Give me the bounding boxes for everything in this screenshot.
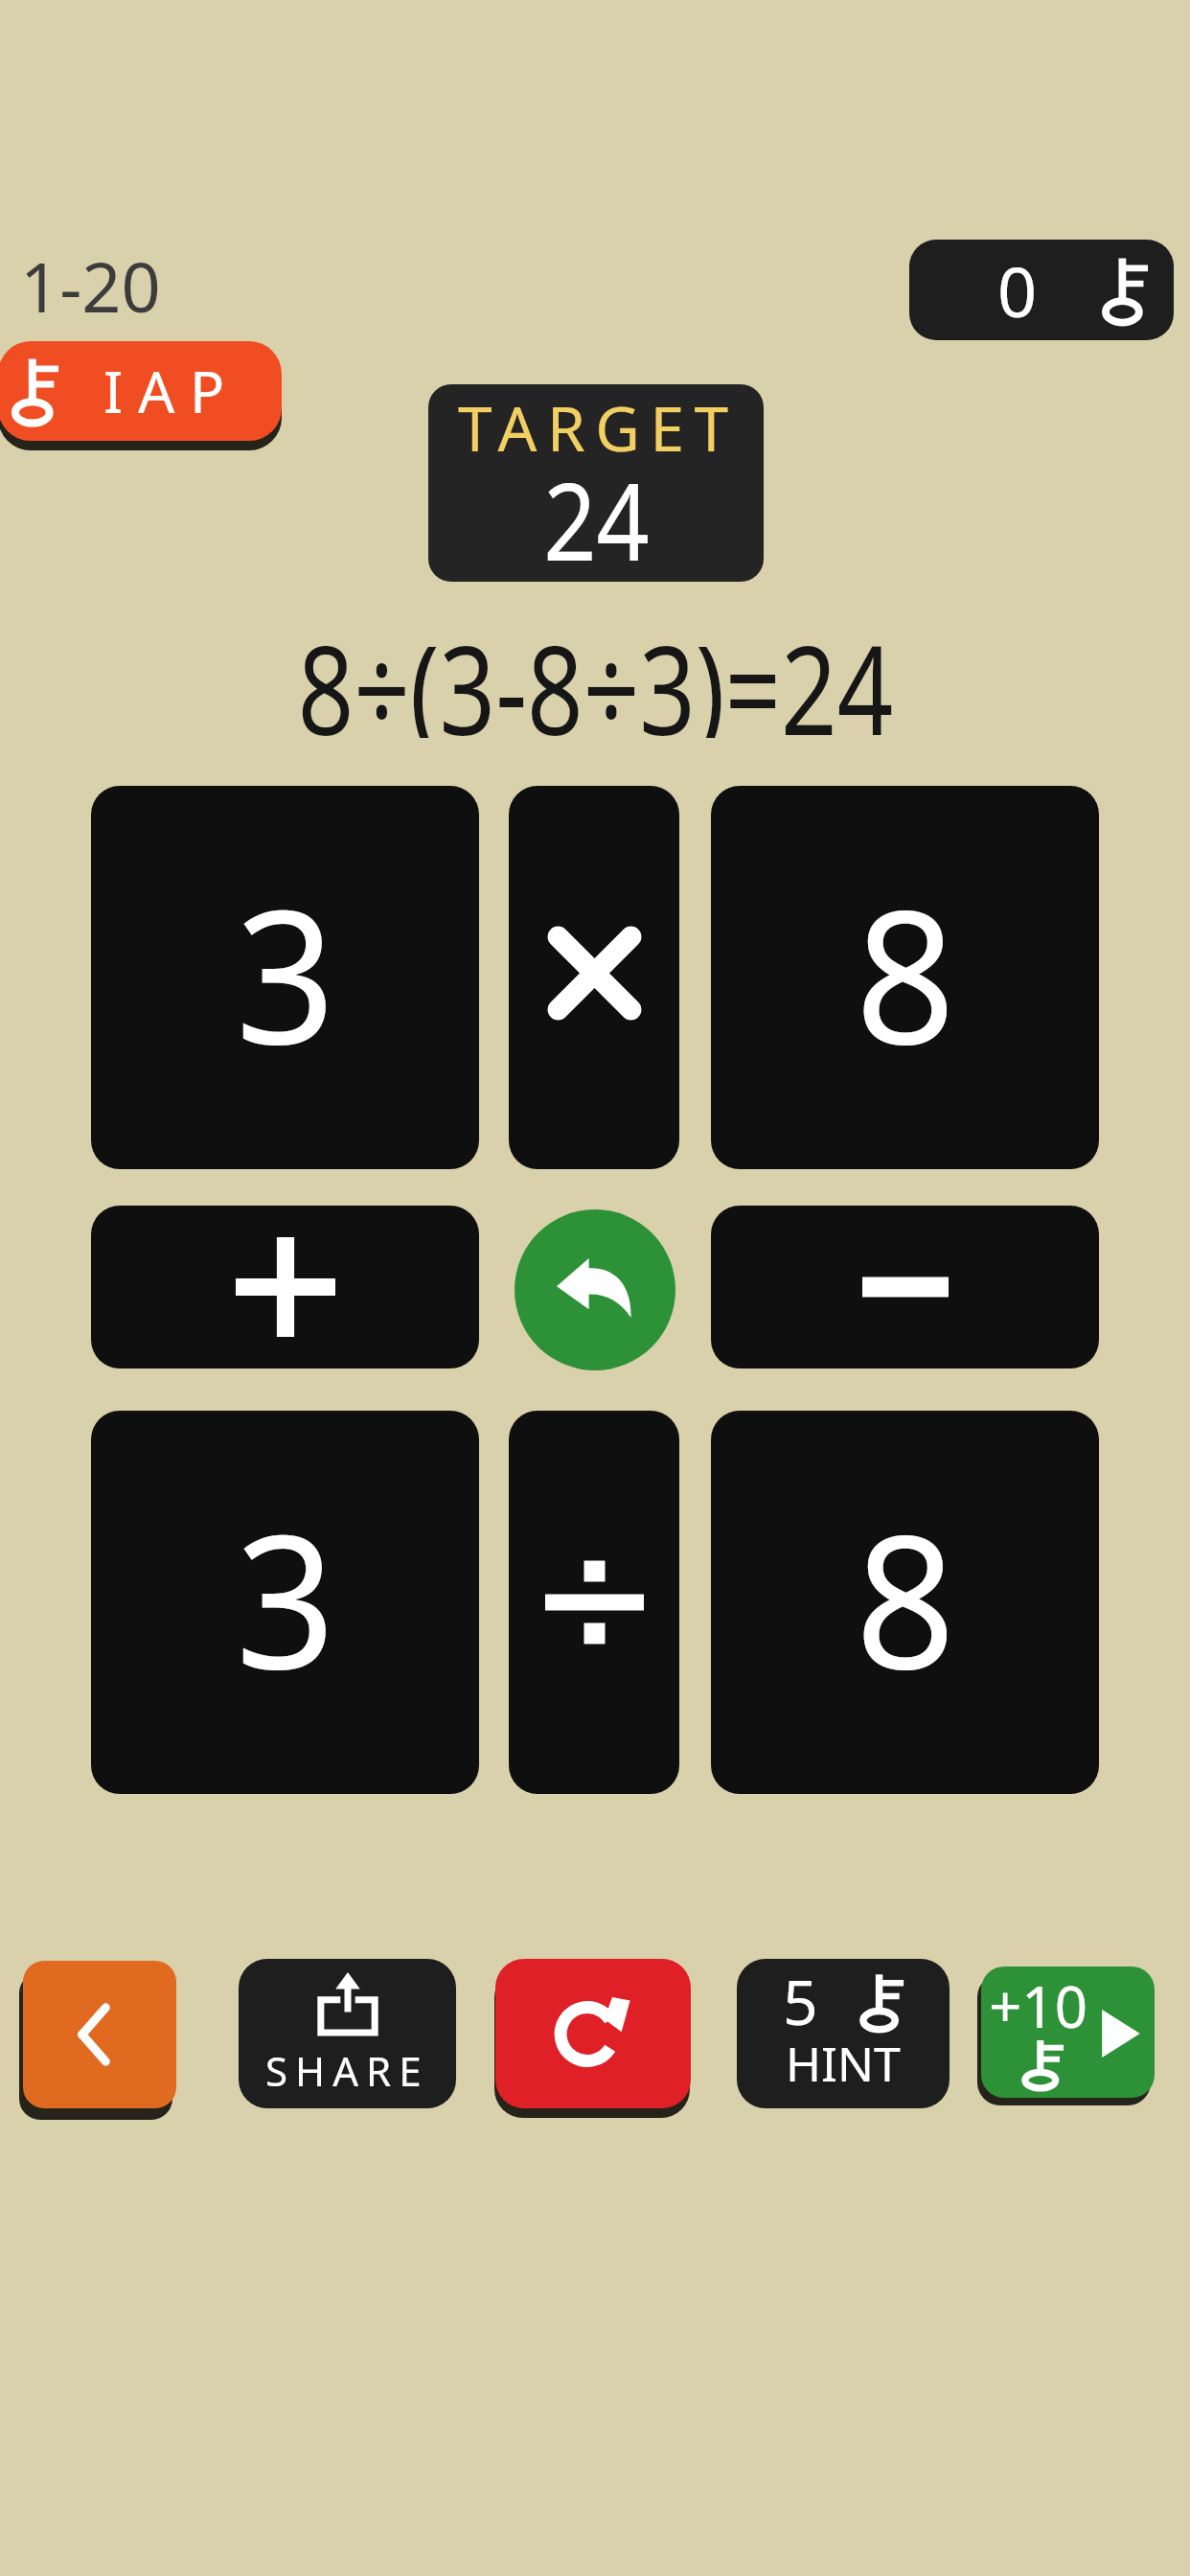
button[interactable] — [509, 1411, 679, 1794]
staticText: TARGET — [458, 386, 739, 470]
button[interactable] — [23, 1961, 176, 2108]
button[interactable]: +10 — [981, 1966, 1155, 2098]
button[interactable]: I A P — [0, 341, 282, 441]
button[interactable] — [509, 786, 679, 1169]
button[interactable]: SHARE — [239, 1959, 456, 2108]
button[interactable]: 3 — [91, 786, 479, 1169]
button[interactable] — [515, 1209, 675, 1370]
staticText: 1-20 — [20, 239, 161, 333]
staticText: SHARE — [265, 2043, 429, 2098]
button[interactable]: 5 — [737, 1959, 950, 2108]
button[interactable] — [495, 1959, 691, 2108]
staticText: 5 — [783, 1960, 818, 2043]
staticText: 0 — [997, 243, 1038, 337]
staticText: 24 — [544, 447, 649, 591]
staticText: 8 — [855, 847, 956, 1098]
staticText: 8 — [855, 1472, 956, 1723]
staticText: HINT — [786, 2031, 901, 2096]
button[interactable]: 0 — [909, 240, 1174, 340]
button[interactable]: 8 — [711, 1411, 1099, 1794]
button[interactable]: 3 — [91, 1411, 479, 1794]
staticText: 8÷(3-8÷3)=24 — [298, 604, 893, 738]
button[interactable] — [91, 1206, 479, 1368]
staticText: I A P — [103, 352, 225, 430]
button[interactable] — [711, 1206, 1099, 1368]
staticText: 3 — [236, 1472, 336, 1723]
staticText: 3 — [236, 847, 336, 1098]
button[interactable]: 8 — [711, 786, 1099, 1169]
staticText: +10 — [989, 1966, 1087, 2045]
